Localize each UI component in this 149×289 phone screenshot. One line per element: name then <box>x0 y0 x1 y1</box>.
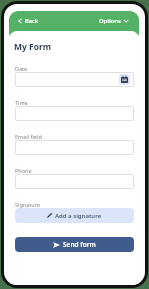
button[interactable]: Add a signature <box>15 208 134 223</box>
staticText: Phone <box>15 167 32 174</box>
staticText: Send form <box>63 240 96 249</box>
button[interactable]: Pick date <box>15 72 134 87</box>
button[interactable]: Options <box>93 11 139 31</box>
staticText: Time <box>15 99 28 106</box>
staticText: Email field <box>15 133 42 140</box>
button[interactable] <box>15 140 134 155</box>
staticText: Date <box>15 65 28 72</box>
button[interactable] <box>15 106 134 121</box>
button[interactable]: Back <box>9 11 45 31</box>
staticText: Options <box>99 17 121 25</box>
button[interactable] <box>15 174 134 189</box>
staticText: Add a signature <box>55 212 102 220</box>
staticText: Signature <box>15 201 40 208</box>
staticText: Back <box>25 17 39 25</box>
button[interactable]: Pick date <box>119 74 130 85</box>
button[interactable]: Send form <box>15 237 134 252</box>
staticText: My Form <box>14 41 52 53</box>
